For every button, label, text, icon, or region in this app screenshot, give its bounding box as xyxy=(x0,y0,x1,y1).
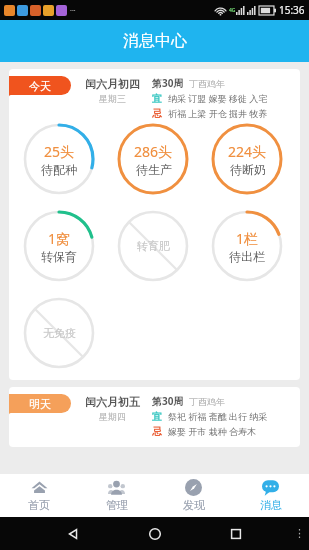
staticText: 宜 xyxy=(152,92,162,105)
button[interactable]: 286头 待生产 xyxy=(116,122,190,196)
button[interactable]: 1窝 转保育 xyxy=(22,209,96,283)
button[interactable]: 管理 xyxy=(78,474,155,517)
staticText: 忌 xyxy=(152,107,162,120)
staticText: 忌 xyxy=(152,425,162,438)
staticText: 发现 xyxy=(183,498,205,512)
button[interactable]: 1栏 待出栏 xyxy=(210,209,284,283)
staticText: 祭祀 祈福 斋醮 出行 纳采 xyxy=(168,410,268,422)
button[interactable]: Recents xyxy=(228,526,244,542)
staticText: 待出栏 xyxy=(229,249,265,264)
button[interactable]: Home xyxy=(147,526,163,542)
staticText: 管理 xyxy=(106,498,128,512)
staticText: 消息 xyxy=(260,498,282,512)
staticText: 第30周 xyxy=(152,394,184,408)
button[interactable]: 25头 待配种 xyxy=(22,122,96,196)
staticText: 待配种 xyxy=(41,162,77,177)
staticText: 祈福 上梁 开仓 掘井 牧养 xyxy=(168,107,268,119)
staticText: 25头 xyxy=(44,142,75,161)
button[interactable]: 发现 xyxy=(155,474,232,517)
staticText: ⋮ xyxy=(294,527,305,540)
staticText: 无免疫 xyxy=(43,326,76,340)
staticText: 转育肥 xyxy=(137,239,170,253)
staticText: 纳采 订盟 嫁娶 移徙 入宅 xyxy=(168,92,268,104)
staticText: 4G xyxy=(229,7,236,14)
staticText: 224头 xyxy=(228,142,267,161)
staticText: 首页 xyxy=(28,498,50,512)
staticText: 1栏 xyxy=(236,229,259,248)
staticText: 待断奶 xyxy=(230,162,266,177)
staticText: 闰六月初五 xyxy=(85,395,140,409)
staticText: 丁酉鸡年 xyxy=(189,78,225,89)
staticText: 星期四 xyxy=(99,411,126,422)
button[interactable]: 224头 待断奶 xyxy=(210,122,284,196)
staticText: 第30周 xyxy=(152,76,184,90)
staticText: 15:36 xyxy=(279,3,305,17)
staticText: 宜 xyxy=(152,410,162,423)
staticText: 待生产 xyxy=(136,162,172,177)
staticText: 286头 xyxy=(134,142,173,161)
staticText: 嫁娶 开市 栽种 合寿木 xyxy=(168,425,257,437)
staticText: 丁酉鸡年 xyxy=(189,396,225,407)
staticText: 1窝 xyxy=(48,229,71,248)
button[interactable]: Back xyxy=(65,526,81,542)
staticText: 闰六月初四 xyxy=(85,77,140,91)
staticText: 转保育 xyxy=(41,249,77,264)
button[interactable]: 转育肥 xyxy=(116,209,190,283)
button[interactable]: 无免疫 xyxy=(22,296,96,370)
staticText: 明天 xyxy=(29,397,51,411)
staticText: ··· xyxy=(70,6,76,16)
staticText: 今天 xyxy=(29,79,51,93)
staticText: 星期三 xyxy=(99,93,126,104)
staticText: 消息中心 xyxy=(123,31,187,51)
button[interactable]: 消息 xyxy=(232,474,309,517)
button[interactable]: 首页 xyxy=(0,474,78,517)
